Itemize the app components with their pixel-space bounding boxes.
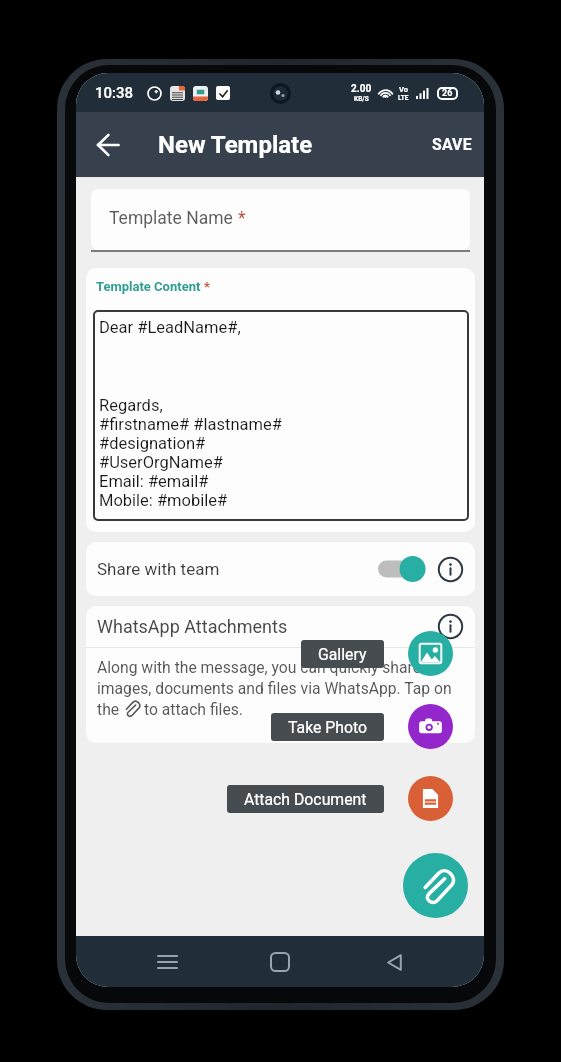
staticText: *: [238, 208, 246, 229]
staticText: Along with the message, you can quickly …: [97, 658, 422, 676]
button[interactable]: Template Name: [91, 189, 470, 250]
button[interactable]: Info about WhatsApp attachments: [437, 613, 464, 640]
staticText: #UserOrgName#: [99, 453, 223, 472]
staticText: to attach files.: [144, 700, 243, 718]
button[interactable]: Gallery: [301, 640, 384, 668]
button[interactable]: Take Photo: [408, 704, 453, 749]
staticText: Attach Document: [244, 790, 367, 809]
button[interactable]: Home: [257, 939, 303, 985]
staticText: images, documents and files via WhatsApp…: [97, 679, 452, 697]
staticText: #designation#: [99, 434, 206, 453]
staticText: 10:38: [95, 84, 134, 102]
button[interactable]: Back: [83, 120, 133, 170]
staticText: Email: #email#: [99, 472, 209, 491]
button[interactable]: SAVE: [418, 123, 484, 166]
button[interactable]: Recent apps: [144, 939, 190, 985]
staticText: Gallery: [318, 645, 367, 664]
button[interactable]: Share with team: [378, 554, 426, 584]
staticText: #firstname# #lastname#: [99, 415, 282, 434]
button[interactable]: Gallery: [408, 631, 453, 676]
staticText: SAVE: [432, 135, 472, 154]
button[interactable]: Back: [371, 939, 417, 985]
staticText: Dear #LeadName#,: [99, 318, 241, 337]
staticText: Take Photo: [288, 718, 367, 737]
staticText: WhatsApp Attachments: [97, 616, 288, 637]
staticText: KB/S: [354, 95, 369, 103]
staticText: New Template: [158, 131, 313, 159]
staticText: 26: [442, 88, 453, 99]
button[interactable]: Attach Document: [408, 776, 453, 821]
staticText: Template Name: [109, 208, 238, 229]
staticText: 2.00: [351, 83, 372, 95]
staticText: the: [97, 700, 120, 718]
staticText: Vo: [399, 85, 408, 94]
button[interactable]: Info about share with team: [437, 556, 464, 583]
staticText: Mobile: #mobile#: [99, 491, 228, 510]
staticText: Share with team: [97, 559, 220, 579]
staticText: *: [204, 279, 210, 294]
staticText: Template Content: [96, 279, 204, 294]
staticText: Regards,: [99, 396, 163, 415]
button[interactable]: Attach Document: [227, 785, 384, 813]
button[interactable]: Attach file: [403, 853, 468, 918]
button[interactable]: Take Photo: [271, 713, 384, 741]
staticText: LTE: [398, 94, 409, 102]
